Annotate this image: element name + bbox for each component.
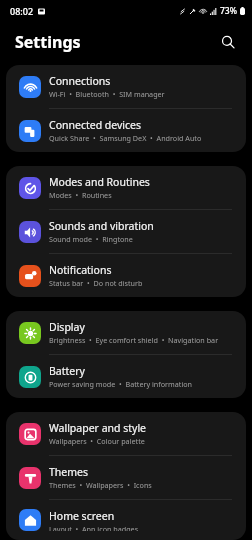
staticText: 73%	[220, 5, 237, 17]
button[interactable]: Search	[214, 28, 242, 56]
staticText: Modes and Routines	[49, 175, 150, 189]
button[interactable]: Modes and Routines	[6, 166, 246, 209]
staticText: Wi-Fi • Bluetooth • SIM manager	[49, 89, 165, 99]
button[interactable]: Connections	[6, 65, 246, 108]
staticText: Notifications	[49, 263, 112, 277]
staticText: Themes	[49, 465, 89, 479]
staticText: Display	[49, 320, 85, 334]
button[interactable]: Display	[6, 311, 246, 354]
button[interactable]: Home screen	[6, 500, 246, 540]
staticText: 08:02	[10, 5, 34, 17]
staticText: Battery	[49, 364, 85, 378]
button[interactable]: Battery	[6, 355, 246, 398]
staticText: Quick Share • Samsung DeX • Android Auto	[49, 133, 202, 143]
button[interactable]: Themes	[6, 456, 246, 499]
staticText: Sound mode • Ringtone	[49, 234, 133, 244]
staticText: Brightness • Eye comfort shield • Naviga…	[49, 335, 219, 345]
staticText: Layout • App icon badges	[49, 524, 139, 531]
staticText: Themes • Wallpapers • Icons	[49, 480, 152, 490]
staticText: Wallpapers • Colour palette	[49, 436, 145, 446]
button[interactable]: Wallpaper and style	[6, 412, 246, 455]
staticText: Status bar • Do not disturb	[49, 278, 143, 288]
staticText: Home screen	[49, 509, 115, 523]
staticText: Power saving mode • Battery information	[49, 379, 193, 389]
staticText: Wallpaper and style	[49, 421, 147, 435]
staticText: Settings	[15, 31, 81, 53]
button[interactable]: Sounds and vibration	[6, 210, 246, 253]
staticText: Sounds and vibration	[49, 219, 154, 233]
staticText: Connected devices	[49, 118, 142, 132]
button[interactable]: Connected devices	[6, 109, 246, 152]
button[interactable]: Notifications	[6, 254, 246, 297]
staticText: Connections	[49, 74, 111, 88]
staticText: Modes • Routines	[49, 190, 112, 200]
